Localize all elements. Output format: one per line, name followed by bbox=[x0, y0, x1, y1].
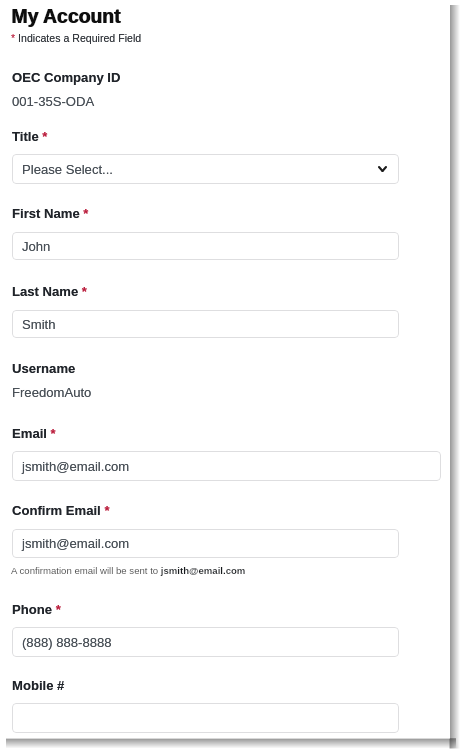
staticText: Username bbox=[12, 361, 76, 376]
staticText: First Name * bbox=[12, 206, 89, 221]
staticText: Email * bbox=[12, 426, 56, 441]
staticText: Title * bbox=[12, 129, 48, 144]
staticText: (888) 888-8888 bbox=[22, 635, 112, 650]
staticText: Please Select... bbox=[22, 162, 113, 177]
staticText: (888) 888-8888 bbox=[22, 635, 112, 650]
staticText: 001-35S-ODA bbox=[12, 94, 95, 109]
staticText: Mobile # bbox=[12, 678, 65, 693]
staticText: Mobile # bbox=[12, 678, 65, 693]
staticText: OEC Company ID bbox=[12, 70, 121, 85]
staticText: FreedomAuto bbox=[12, 385, 92, 400]
staticText: A confirmation email will be sent to jsm… bbox=[11, 565, 246, 576]
staticText: First Name * bbox=[12, 206, 89, 221]
staticText: Last Name * bbox=[12, 284, 87, 299]
staticText: Last Name * bbox=[12, 284, 87, 299]
staticText: John bbox=[22, 239, 51, 254]
staticText: jsmith@email.com bbox=[22, 536, 130, 551]
staticText: John bbox=[22, 239, 51, 254]
staticText: Phone * bbox=[12, 602, 61, 617]
staticText: jsmith@email.com bbox=[22, 459, 130, 474]
staticText: Email * bbox=[12, 426, 56, 441]
staticText: Confirm Email * bbox=[12, 503, 110, 518]
staticText: Smith bbox=[22, 317, 56, 332]
staticText: Smith bbox=[22, 317, 56, 332]
staticText: Phone * bbox=[12, 602, 61, 617]
staticText: Title * bbox=[12, 129, 48, 144]
staticText: 001-35S-ODA bbox=[12, 94, 95, 109]
staticText: * Indicates a Required Field bbox=[11, 32, 142, 44]
staticText: * Indicates a Required Field bbox=[11, 32, 142, 44]
staticText: My Account bbox=[12, 5, 122, 27]
button[interactable]: Email bbox=[12, 451, 441, 481]
button[interactable]: Title, Please Select bbox=[12, 154, 399, 184]
staticText: jsmith@email.com bbox=[22, 459, 130, 474]
button[interactable]: First Name bbox=[12, 232, 399, 260]
staticText: My Account bbox=[11, 5, 121, 27]
staticText: Please Select... bbox=[22, 162, 113, 177]
button[interactable]: Last Name bbox=[12, 310, 399, 338]
button[interactable]: Phone bbox=[12, 627, 399, 657]
button[interactable]: Mobile number bbox=[12, 703, 399, 733]
staticText: FreedomAuto bbox=[12, 385, 92, 400]
staticText: jsmith@email.com bbox=[22, 536, 130, 551]
staticText: Confirm Email * bbox=[12, 503, 110, 518]
staticText: Username bbox=[12, 361, 76, 376]
button[interactable]: Confirm Email bbox=[12, 529, 399, 558]
staticText: OEC Company ID bbox=[12, 70, 121, 85]
